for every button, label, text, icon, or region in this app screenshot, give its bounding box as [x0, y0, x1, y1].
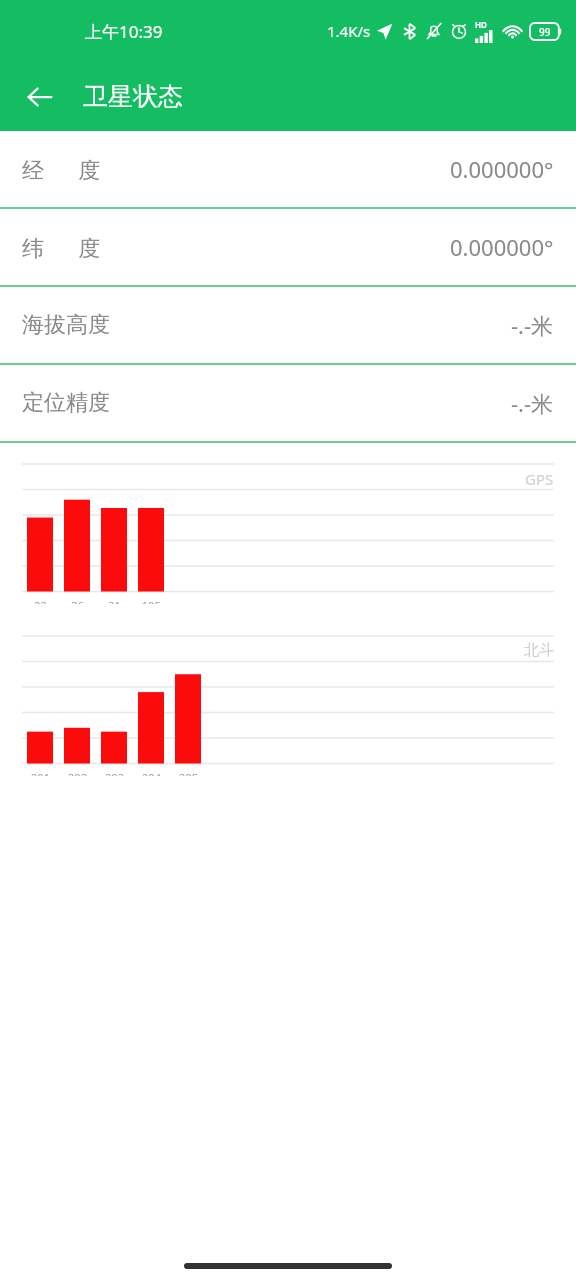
staticText: -.-米	[511, 310, 554, 340]
staticText: 海拔高度	[22, 311, 110, 339]
staticText: 202	[68, 770, 87, 776]
staticText: 203	[105, 770, 124, 776]
staticText: 纬 度	[22, 232, 101, 262]
staticText: 26	[71, 598, 84, 604]
button[interactable]: Back	[18, 75, 62, 119]
staticText: 0.000000°	[450, 154, 554, 184]
staticText: 205	[179, 770, 198, 776]
staticText: 经 度	[22, 154, 101, 184]
staticText: -.-米	[511, 388, 554, 418]
staticText: GPS	[525, 469, 554, 489]
staticText: 0.000000°	[450, 232, 554, 262]
staticText: 31	[108, 598, 121, 604]
button[interactable]: 纬 度	[0, 209, 576, 285]
staticText: 卫星状态	[83, 81, 183, 112]
staticText: 定位精度	[22, 389, 110, 417]
button[interactable]: 定位精度	[0, 365, 576, 441]
staticText: 上午10:39	[85, 20, 163, 43]
staticText: 99	[539, 25, 551, 39]
staticText: 201	[31, 770, 50, 776]
staticText: 23	[34, 598, 47, 604]
staticText: 1.4K/s	[327, 21, 371, 41]
staticText: 北斗	[524, 641, 554, 660]
button[interactable]: 经 度	[0, 131, 576, 207]
staticText: 195	[142, 598, 161, 604]
staticText: 204	[142, 770, 161, 776]
staticText: HD	[475, 19, 487, 30]
button[interactable]: 海拔高度	[0, 287, 576, 363]
